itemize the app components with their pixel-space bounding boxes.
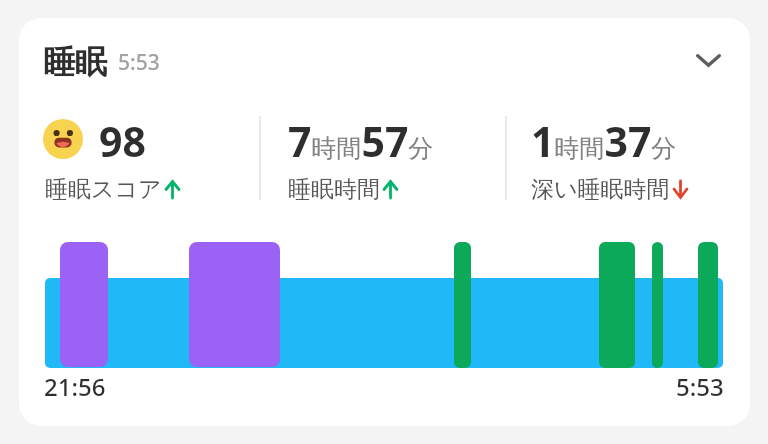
staticText: 1時間37分 xyxy=(531,113,677,169)
button[interactable] xyxy=(686,38,730,82)
staticText: 睡眠スコア xyxy=(45,175,162,204)
staticText: 21:56 xyxy=(44,370,106,403)
staticText: 深い睡眠時間 xyxy=(531,175,670,204)
button[interactable]: 睡眠 xyxy=(19,18,750,426)
staticText: 睡眠 xyxy=(43,42,107,82)
staticText: 睡眠時間 xyxy=(288,175,380,204)
staticText: 98 xyxy=(99,113,146,169)
staticText: 7時間57分 xyxy=(288,113,434,169)
staticText: 5:53 xyxy=(118,48,160,77)
staticText: 5:53 xyxy=(676,370,724,403)
